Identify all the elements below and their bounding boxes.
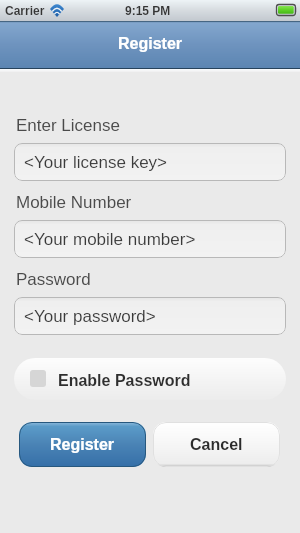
staticText: Carrier xyxy=(5,4,45,17)
button[interactable]: <Your password> xyxy=(14,297,286,335)
staticText: 9:15 PM xyxy=(125,4,171,17)
button[interactable]: <Your mobile number> xyxy=(14,220,286,258)
staticText: Register xyxy=(118,35,183,53)
staticText: <Your password> xyxy=(24,307,156,326)
staticText: Cancel xyxy=(190,436,243,454)
staticText: Enter License xyxy=(16,116,120,135)
staticText: <Your mobile number> xyxy=(24,230,196,249)
button[interactable]: Register xyxy=(19,422,146,467)
staticText: Password xyxy=(16,270,91,289)
button[interactable]: <Your license key> xyxy=(14,143,286,181)
staticText: Register xyxy=(50,436,115,454)
button[interactable]: Cancel xyxy=(153,422,280,467)
staticText: Mobile Number xyxy=(16,193,132,212)
button[interactable]: Enable Password xyxy=(14,358,286,400)
staticText: <Your license key> xyxy=(24,153,168,172)
staticText: Enable Password xyxy=(58,372,191,390)
